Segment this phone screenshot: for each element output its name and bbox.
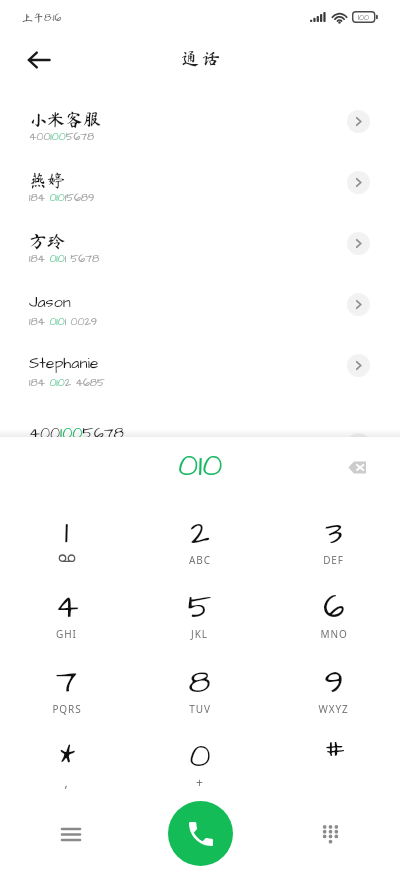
button[interactable]: Dialpad [310, 814, 350, 854]
button[interactable]: 7 [0, 651, 133, 725]
staticText: 184 0102 4685 [29, 375, 105, 390]
staticText: MNO [320, 627, 348, 641]
button[interactable]: Contact details [347, 293, 370, 316]
button[interactable]: 4001005678 [0, 401, 400, 462]
staticText: 184 01015689 [29, 190, 95, 205]
staticText: TUV [189, 702, 211, 716]
staticText: 5 [187, 583, 212, 630]
button[interactable]: 3 [267, 502, 400, 576]
staticText: 方玲 [29, 232, 65, 250]
staticText: 4 [55, 583, 79, 630]
staticText: # [324, 732, 344, 774]
staticText: 010 [178, 443, 223, 487]
staticText: GHI [56, 627, 77, 641]
staticText: * [59, 736, 75, 778]
button[interactable]: Call [168, 801, 233, 866]
staticText: 通话 [181, 49, 223, 67]
button[interactable]: 8 [133, 651, 266, 725]
staticText: 7 [56, 658, 77, 705]
button[interactable]: Stephanie [0, 340, 400, 401]
button[interactable]: 4 [0, 576, 133, 650]
staticText: JKL [191, 627, 208, 641]
staticText: Stephanie [29, 352, 99, 374]
staticText: 184 0101 5678 [29, 251, 100, 266]
button[interactable]: Jason [0, 279, 400, 340]
staticText: 3 [325, 509, 343, 556]
button[interactable]: 小米客服 [0, 96, 400, 157]
staticText: 6 [323, 583, 345, 630]
button[interactable]: Contact details [347, 433, 370, 456]
button[interactable]: Call history [51, 814, 91, 854]
button[interactable]: Contact details [347, 232, 370, 255]
staticText: 小米客服 [29, 110, 101, 128]
button[interactable]: Backspace [338, 448, 376, 486]
staticText: 100 [358, 12, 370, 23]
button[interactable]: 1 [0, 502, 133, 576]
staticText: 4001005678 [29, 422, 124, 444]
staticText: 4001005678 [29, 129, 95, 144]
staticText: 8:16 [44, 10, 62, 25]
button[interactable]: 6 [267, 576, 400, 650]
button[interactable]: 9 [267, 651, 400, 725]
button[interactable]: 方玲 [0, 218, 400, 279]
staticText: ABC [189, 553, 211, 567]
button[interactable]: 燕婷 [0, 157, 400, 218]
staticText: PQRS [52, 702, 82, 716]
button[interactable]: 2 [133, 502, 266, 576]
staticText: DEF [323, 553, 344, 567]
staticText: 0 [189, 732, 211, 779]
staticText: 184 0101 0029 [29, 314, 97, 329]
button[interactable]: 0 [133, 725, 266, 799]
button[interactable]: # [267, 725, 400, 799]
button[interactable]: Contact details [347, 110, 370, 133]
staticText: Jason [29, 291, 71, 313]
staticText: 燕婷 [29, 171, 65, 189]
button[interactable]: Contact details [347, 171, 370, 194]
staticText: WXYZ [318, 702, 349, 716]
staticText: 9 [324, 658, 344, 705]
staticText: , [64, 774, 69, 790]
button[interactable]: Contact details [347, 354, 370, 377]
staticText: 2 [190, 509, 210, 556]
staticText: 8 [188, 658, 211, 705]
staticText: + [196, 774, 204, 790]
button[interactable]: * [0, 725, 133, 799]
button[interactable]: 5 [133, 576, 266, 650]
staticText: 1 [64, 509, 69, 556]
staticText: 上午 [22, 12, 44, 23]
button[interactable]: Back [16, 39, 62, 85]
